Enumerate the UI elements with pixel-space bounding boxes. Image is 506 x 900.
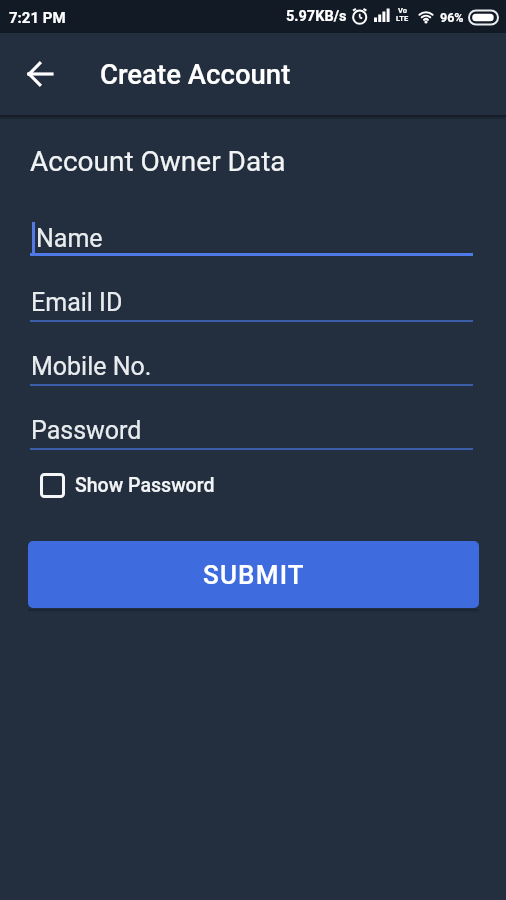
- staticText: 5.97KB/s: [286, 8, 347, 25]
- staticText: SUBMIT: [203, 560, 305, 590]
- staticText: Mobile No.: [31, 352, 152, 381]
- staticText: Show Password: [75, 474, 215, 497]
- staticText: 7:21 PM: [9, 9, 66, 27]
- staticText: Email ID: [31, 288, 123, 317]
- staticText: Account Owner Data: [30, 145, 286, 178]
- button[interactable]: [16, 50, 64, 98]
- staticText: Vo: [398, 6, 407, 15]
- staticText: 96%: [440, 10, 464, 25]
- staticText: Name: [36, 224, 103, 253]
- staticText: Create Account: [100, 58, 291, 90]
- staticText: Password: [31, 416, 142, 445]
- button[interactable]: SUBMIT: [28, 541, 479, 608]
- staticText: LTE: [396, 14, 409, 23]
- button[interactable]: Show Password: [33, 466, 233, 504]
